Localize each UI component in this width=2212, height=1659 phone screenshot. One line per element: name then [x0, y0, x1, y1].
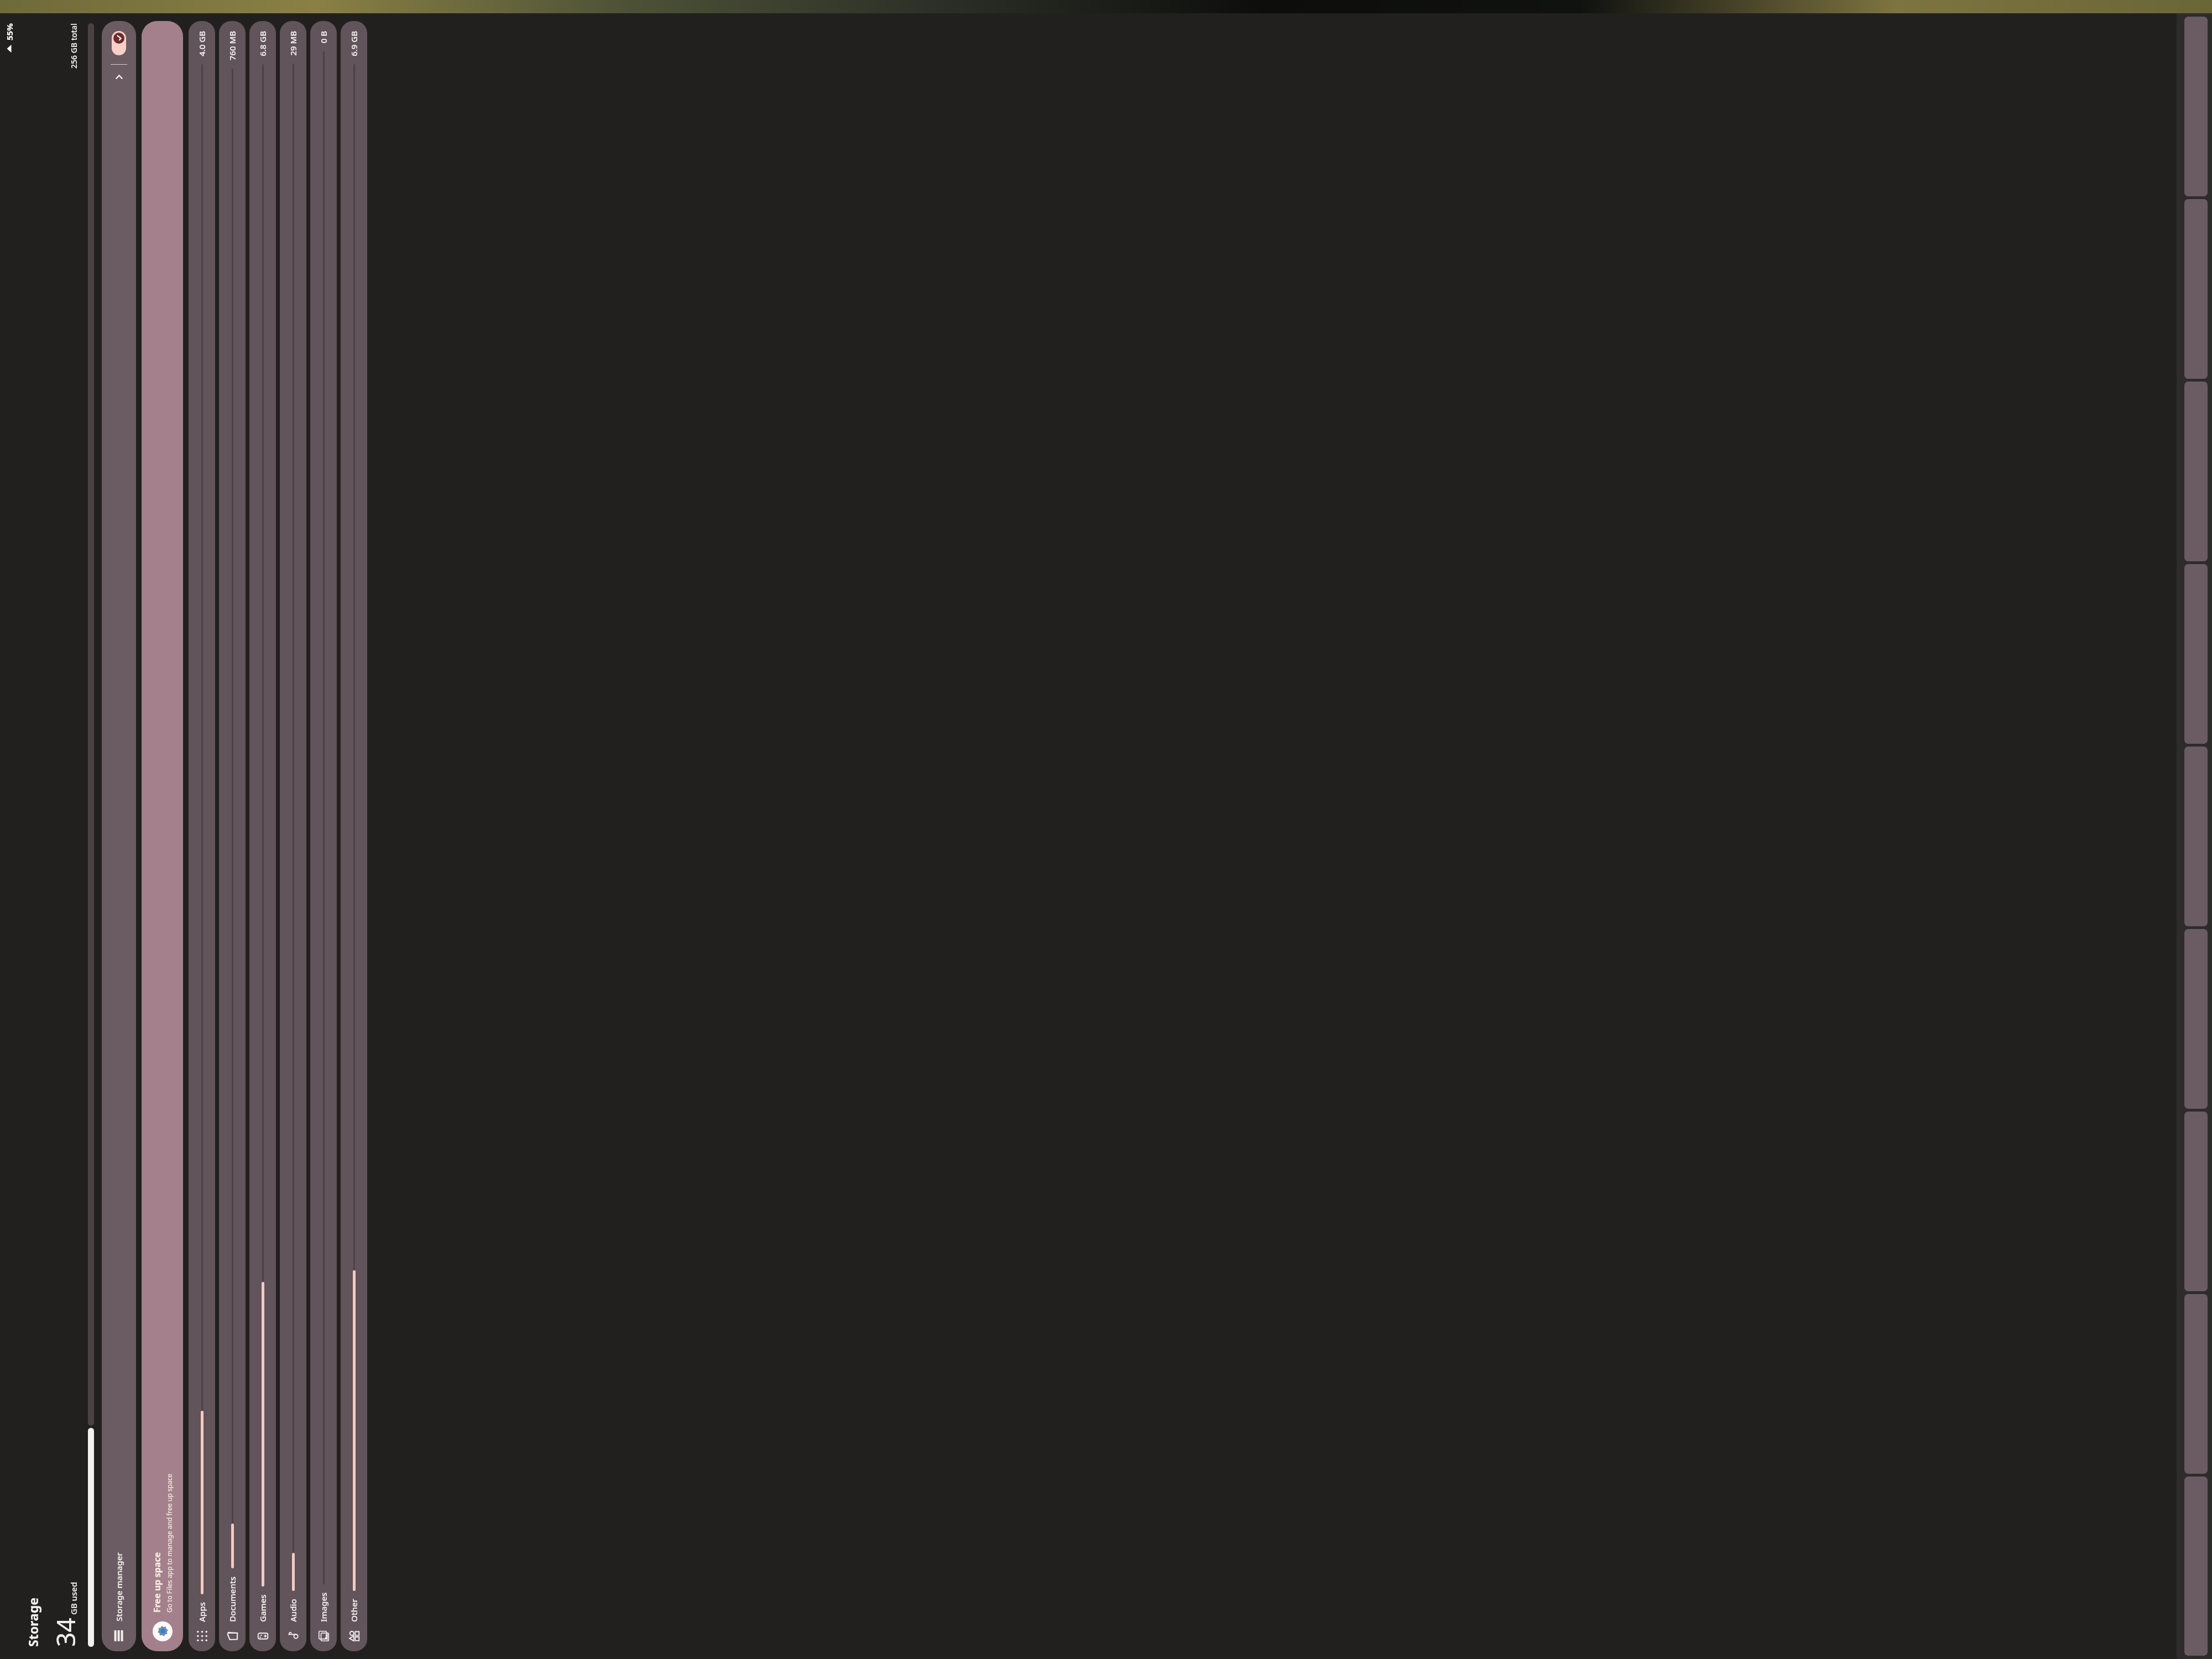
staticText: Storage [24, 1598, 41, 1647]
staticText: 55% [4, 23, 15, 40]
staticText: 760 MB [227, 31, 238, 61]
staticText: 256 GB total [69, 23, 79, 69]
staticText: Go to Files app to manage and free up sp… [165, 1473, 174, 1613]
button[interactable]: Storage manager [102, 21, 136, 1651]
button[interactable] [2184, 1294, 2208, 1474]
button[interactable] [2184, 929, 2208, 1109]
staticText: 4.0 GB [196, 31, 207, 56]
button[interactable]: Audio [280, 21, 306, 1651]
button[interactable] [2184, 564, 2208, 744]
button[interactable]: Games [249, 21, 276, 1651]
staticText: Free up space [151, 1552, 163, 1613]
staticText: 0 B [318, 31, 329, 44]
button[interactable] [2184, 17, 2208, 196]
button[interactable] [2184, 382, 2208, 561]
button[interactable]: Other [341, 21, 367, 1651]
button[interactable]: Images [310, 21, 337, 1651]
staticText: 6.9 GB [348, 31, 359, 56]
button[interactable]: Apps [189, 21, 215, 1651]
staticText: Games [257, 1594, 268, 1622]
button[interactable]: Storage manager toggle [112, 31, 126, 55]
staticText: GB used [68, 1582, 79, 1615]
button[interactable] [2184, 1112, 2208, 1291]
button[interactable]: Free up space [142, 21, 183, 1651]
button[interactable] [2184, 747, 2208, 926]
staticText: Images [318, 1592, 329, 1622]
button[interactable] [2184, 199, 2208, 379]
button[interactable] [2184, 1477, 2208, 1656]
staticText: 29 MB [288, 31, 299, 56]
staticText: Storage manager [113, 1552, 124, 1621]
button[interactable]: Documents [219, 21, 246, 1651]
staticText: 6.8 GB [257, 31, 268, 56]
staticText: Audio [288, 1599, 299, 1622]
other: Open [114, 72, 124, 82]
staticText: Apps [196, 1602, 207, 1622]
staticText: Other [348, 1599, 359, 1622]
staticText: 34 [48, 1618, 83, 1647]
staticText: Documents [227, 1576, 238, 1622]
